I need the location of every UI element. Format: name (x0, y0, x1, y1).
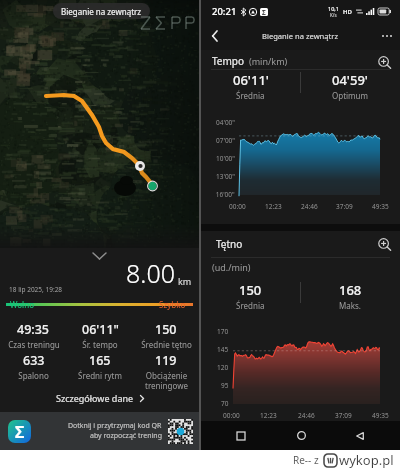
staticText: 00:00 (229, 202, 246, 211)
staticText: 120 (217, 363, 229, 372)
staticText: wykop.pl (339, 451, 394, 469)
staticText: Średnia (236, 300, 265, 311)
button[interactable]: Back (201, 25, 227, 47)
staticText: 00:00 (223, 411, 240, 420)
staticText: (min/km) (249, 55, 288, 67)
staticText: 12:23 (260, 411, 277, 420)
staticText: 24:46 (298, 411, 315, 420)
staticText: 49:35 (372, 411, 389, 420)
staticText: Czas treningu (8, 339, 60, 350)
staticText: aby rozpocząć trening (90, 431, 162, 441)
staticText: 70 (221, 399, 229, 408)
staticText: 49:35 (17, 321, 50, 338)
staticText: 20:21 (212, 5, 237, 18)
staticText: Szczegółowe dane (56, 392, 134, 404)
button[interactable]: Home (281, 421, 321, 450)
staticText: Optimum (332, 90, 369, 101)
staticText: 168 (339, 281, 362, 299)
staticText: 633 (23, 352, 45, 369)
button[interactable]: More options (374, 25, 400, 47)
staticText: Szybko (159, 299, 186, 310)
staticText: 49:35 (372, 202, 389, 211)
staticText: 150 (155, 321, 177, 338)
button[interactable]: Bieganie na zewnątrz (53, 3, 150, 19)
staticText: 06'11" (82, 321, 119, 338)
staticText: 06'11' (233, 71, 269, 89)
staticText: 18 lip 2025, 19:28 (9, 285, 63, 294)
staticText: 170 (217, 327, 229, 336)
staticText: 37:09 (336, 202, 353, 211)
staticText: (ud./min) (212, 261, 251, 273)
staticText: Tętno (216, 237, 243, 251)
staticText: 24:46 (301, 202, 318, 211)
staticText: HD (343, 8, 352, 16)
button[interactable]: Back (340, 421, 380, 450)
staticText: Tempo (212, 54, 245, 68)
staticText: Bieganie na zewnątrz (61, 6, 142, 17)
staticText: 10'00" (216, 154, 235, 163)
staticText: 8.00 (126, 256, 175, 290)
staticText: Średnie tętno (141, 339, 192, 350)
button[interactable]: Recents (221, 421, 261, 450)
staticText: Re-- z (293, 453, 319, 467)
button[interactable]: Szczegółowe dane (46, 389, 154, 407)
staticText: 04'00" (216, 118, 235, 127)
staticText: 95 (221, 381, 229, 390)
staticText: 37:09 (335, 411, 352, 420)
staticText: K/s (330, 12, 337, 18)
staticText: km (178, 275, 192, 287)
staticText: 145 (217, 345, 229, 354)
staticText: 04'59' (332, 71, 368, 89)
staticText: 119 (155, 352, 177, 369)
staticText: 10,1 (328, 5, 339, 12)
staticText: 12:23 (265, 202, 282, 211)
staticText: Śr. tempo (82, 339, 118, 350)
staticText: Σ (262, 8, 266, 16)
staticText: Obciążenie treningowe (145, 370, 188, 392)
staticText: Spalono (18, 370, 49, 381)
staticText: Maks. (339, 300, 361, 311)
staticText: Średni rytm (78, 370, 122, 381)
staticText: Bieganie na zewnątrz (262, 31, 339, 41)
staticText: Σ (15, 421, 25, 443)
staticText: 150 (239, 281, 262, 299)
staticText: 13'00" (216, 172, 235, 181)
staticText: 16'00" (214, 190, 235, 199)
staticText: Wolno (10, 299, 34, 310)
staticText: Średnia (236, 90, 265, 101)
button[interactable]: Zoom in (373, 233, 395, 255)
staticText: 165 (89, 352, 111, 369)
button[interactable]: Σ (0, 412, 199, 450)
button[interactable]: Zoom in (373, 51, 395, 73)
staticText: Dotknij i przytrzymaj kod QR (68, 421, 162, 431)
staticText: 07'00" (216, 136, 235, 145)
